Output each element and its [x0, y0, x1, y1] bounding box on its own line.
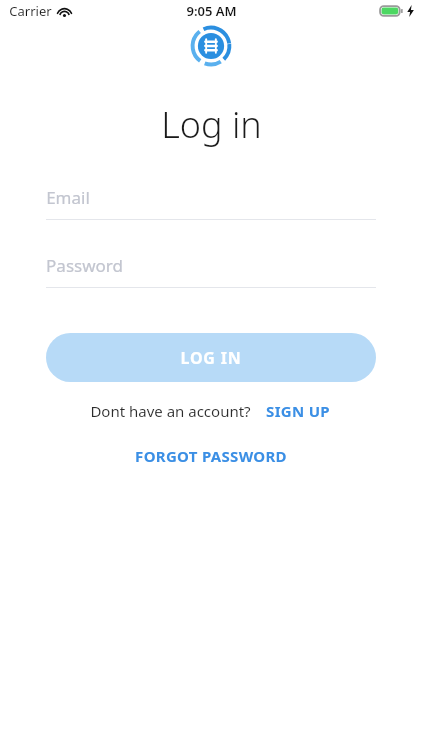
- staticText: SIGN UP: [266, 401, 330, 421]
- staticText: Email: [46, 186, 90, 209]
- button[interactable]: LOG IN: [46, 333, 376, 382]
- staticText: Log in: [161, 100, 262, 149]
- other: App logo: [188, 23, 234, 69]
- button[interactable]: FORGOT PASSWORD: [129, 443, 293, 469]
- button[interactable]: Email: [46, 186, 376, 220]
- button[interactable]: Password: [46, 254, 376, 288]
- button[interactable]: SIGN UP: [264, 398, 332, 424]
- staticText: Carrier: [9, 2, 52, 20]
- staticText: Dont have an account?: [90, 401, 251, 421]
- staticText: FORGOT PASSWORD: [135, 446, 287, 466]
- staticText: Password: [46, 254, 123, 277]
- staticText: 9:05 AM: [186, 2, 237, 20]
- staticText: LOG IN: [180, 347, 242, 369]
